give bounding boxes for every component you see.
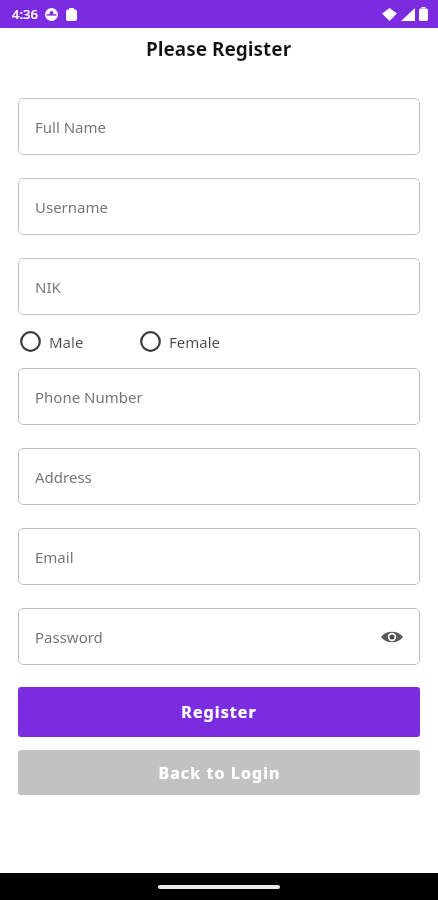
staticText: Password [35,627,103,647]
staticText: Email [35,547,74,567]
button[interactable]: Password [18,608,420,665]
button[interactable]: NIK [18,258,420,315]
staticText: Phone Number [35,387,143,407]
staticText: Full Name [35,117,106,137]
staticText: NIK [35,277,61,297]
button[interactable]: Show password [378,623,406,651]
staticText: 4:36 [12,5,38,23]
button[interactable]: Phone Number [18,368,420,425]
staticText: Female [169,332,221,352]
button[interactable]: Back to Login [18,750,420,795]
button[interactable]: Address [18,448,420,505]
staticText: Please Register [146,36,292,62]
button[interactable]: Register [18,687,420,737]
button[interactable]: Email [18,528,420,585]
staticText: Back to Login [158,762,281,784]
staticText: Username [35,197,108,217]
staticText: Address [35,467,92,487]
staticText: Male [49,332,84,352]
button[interactable]: Female [138,327,223,356]
button[interactable]: Full Name [18,98,420,155]
button[interactable]: Username [18,178,420,235]
staticText: Register [181,701,257,723]
button[interactable]: Male [18,327,86,356]
